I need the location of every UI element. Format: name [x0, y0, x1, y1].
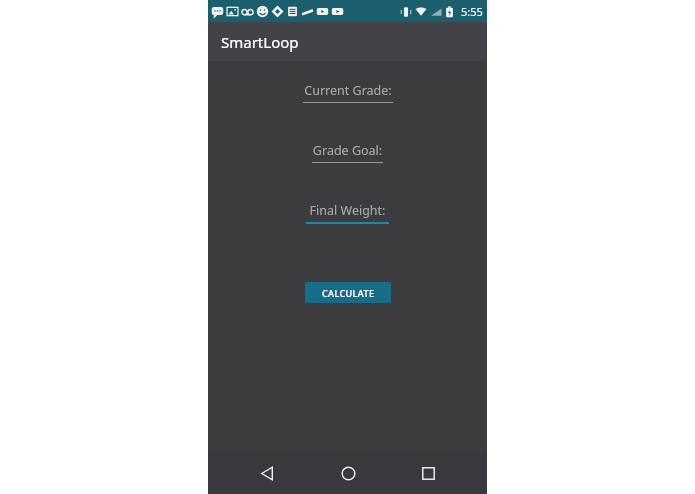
button[interactable]: Back [245, 453, 289, 494]
button[interactable]: Recent apps [406, 453, 450, 494]
staticText: Current Grade: [303, 82, 393, 99]
staticText: SmartLoop [221, 32, 299, 52]
staticText: 5:55 [461, 4, 483, 19]
button[interactable]: Grade Goal: [312, 142, 383, 163]
button[interactable]: CALCULATE [305, 282, 391, 303]
button[interactable]: Home [326, 453, 370, 494]
button[interactable]: Current Grade: [303, 82, 393, 103]
staticText: Grade Goal: [312, 142, 383, 159]
staticText: CALCULATE [322, 287, 375, 299]
button[interactable]: Final Weight: [306, 202, 389, 224]
staticText: Final Weight: [306, 202, 389, 219]
